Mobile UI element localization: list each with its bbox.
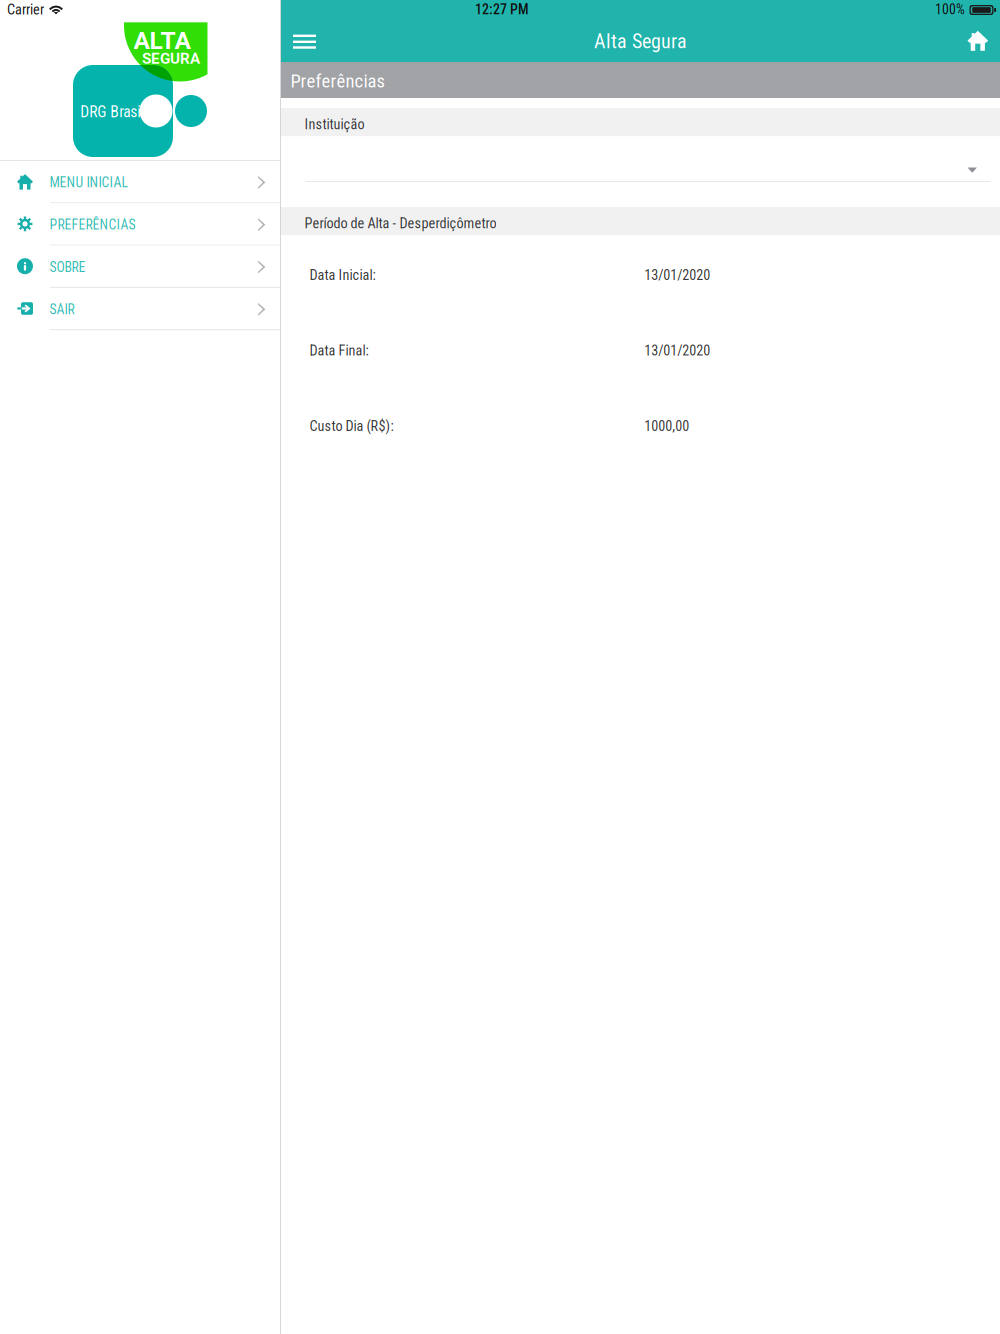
staticText: ALTA xyxy=(133,26,190,55)
staticText: MENU INICIAL xyxy=(49,175,128,191)
staticText: PREFERÊNCIAS xyxy=(49,217,135,233)
staticText: Data Inicial: xyxy=(309,267,375,283)
button[interactable]: Menu xyxy=(281,20,327,62)
button[interactable]: MENU INICIAL xyxy=(0,161,280,203)
staticText: 1000,00 xyxy=(644,418,689,434)
staticText: Data Final: xyxy=(309,342,368,359)
staticText: 13/01/2020 xyxy=(644,342,710,359)
staticText: SOBRE xyxy=(49,259,85,275)
button[interactable]: SAIR xyxy=(0,288,280,330)
button[interactable]: PREFERÊNCIAS xyxy=(0,203,280,246)
staticText: SAIR xyxy=(49,301,74,318)
staticText: Carrier xyxy=(7,1,44,18)
staticText: 13/01/2020 xyxy=(644,267,710,283)
button[interactable]: SOBRE xyxy=(0,246,280,288)
staticText: 12:27 PM xyxy=(475,1,529,18)
staticText: SEGURA xyxy=(142,50,200,67)
staticText: Instituição xyxy=(304,116,364,133)
staticText: 100% xyxy=(935,1,965,18)
staticText: DRG Brasil xyxy=(80,103,145,121)
staticText: Período de Alta - Desperdiçômetro xyxy=(304,215,496,232)
staticText: Preferências xyxy=(290,70,385,92)
staticText: Custo Dia (R$): xyxy=(309,418,393,434)
staticText: Alta Segura xyxy=(594,30,687,53)
button[interactable]: Home xyxy=(954,20,1000,62)
